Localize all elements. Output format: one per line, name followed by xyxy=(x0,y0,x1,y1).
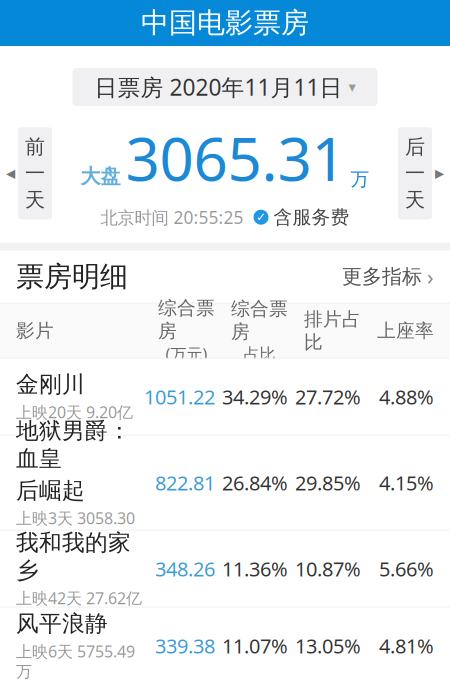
button[interactable]: 前一天 xyxy=(0,127,58,219)
button[interactable]: 风平浪静 xyxy=(0,608,450,684)
staticText: 5.66% xyxy=(379,555,434,582)
staticText: 34.29% xyxy=(222,383,288,410)
staticText: 上映20天 9.20亿 xyxy=(16,401,133,423)
staticText: ◀ xyxy=(6,166,15,180)
staticText: 上座率 xyxy=(377,319,434,342)
staticText: 后崛起 xyxy=(16,477,85,504)
staticText: › xyxy=(427,262,434,291)
staticText: 北京时间 20:55:25 xyxy=(100,206,243,229)
staticText: 1051.22 xyxy=(144,383,215,410)
staticText: 4.88% xyxy=(379,383,434,410)
staticText: 后 xyxy=(405,134,425,159)
staticText: (万元) xyxy=(165,343,207,365)
staticText: 日票房 2020年11月11日 xyxy=(94,72,342,102)
staticText: 影片 xyxy=(16,319,54,342)
staticText: ▶ xyxy=(435,166,444,180)
staticText: 更多指标 xyxy=(342,264,422,289)
button[interactable]: 后一天 xyxy=(392,127,450,219)
staticText: 上映3天 3058.30万 xyxy=(16,507,135,548)
staticText: 天 xyxy=(405,188,425,212)
staticText: 339.38 xyxy=(155,632,215,659)
staticText: 我和我的家乡 xyxy=(16,529,131,584)
staticText: 万 xyxy=(350,168,369,191)
button[interactable]: 金刚川 xyxy=(0,359,450,435)
staticText: 一 xyxy=(25,161,45,186)
staticText: 综合票房 xyxy=(158,297,215,342)
staticText: 票房明细 xyxy=(16,259,128,294)
staticText: 上映42天 27.62亿 xyxy=(16,587,142,609)
button[interactable]: 地狱男爵：血皇 xyxy=(0,436,450,530)
staticText: 一 xyxy=(405,161,425,186)
staticText: 26.84% xyxy=(222,469,288,496)
button[interactable]: 我和我的家乡 xyxy=(0,531,450,607)
staticText: 综合票房 xyxy=(231,297,288,343)
button[interactable]: 更多指标 xyxy=(342,262,434,291)
staticText: 4.81% xyxy=(379,632,434,659)
staticText: 348.26 xyxy=(155,555,215,582)
staticText: 地狱男爵：血皇 xyxy=(16,417,131,473)
staticText: 27.72% xyxy=(295,383,361,410)
staticText: 占比 xyxy=(243,344,275,364)
staticText: ▾ xyxy=(348,79,355,95)
button[interactable]: 日票房 2020年11月11日 xyxy=(72,68,377,106)
staticText: 29.85% xyxy=(295,469,361,496)
staticText: 含服务费 xyxy=(273,206,349,229)
staticText: 天 xyxy=(25,188,45,212)
staticText: 822.81 xyxy=(155,469,215,496)
staticText: 风平浪静 xyxy=(16,610,108,638)
staticText: 11.07% xyxy=(222,632,288,659)
staticText: 排片占比 xyxy=(304,308,361,354)
staticText: 中国电影票房 xyxy=(141,6,309,40)
staticText: ✓ xyxy=(256,210,266,224)
staticText: 上映6天 5755.49万 xyxy=(16,641,135,682)
staticText: 3065.31 xyxy=(125,118,345,198)
staticText: 13.05% xyxy=(295,632,361,659)
staticText: 前 xyxy=(25,134,45,159)
staticText: 大盘 xyxy=(80,164,120,189)
staticText: 4.15% xyxy=(379,469,434,496)
staticText: 10.87% xyxy=(295,555,361,582)
staticText: 金刚川 xyxy=(16,371,85,398)
staticText: 11.36% xyxy=(222,555,288,582)
